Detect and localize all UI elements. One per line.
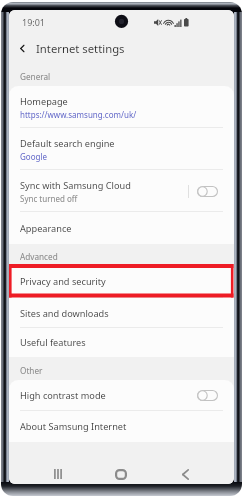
staticText: https://www.samsung.com/uk/ bbox=[20, 109, 137, 120]
button[interactable]: Homepage bbox=[9, 86, 234, 128]
button[interactable]: High contrast mode bbox=[9, 380, 234, 411]
staticText: Appearance bbox=[20, 222, 72, 235]
staticText: Google bbox=[20, 151, 47, 162]
staticText: Advanced bbox=[20, 251, 58, 262]
button[interactable]: Home bbox=[89, 464, 153, 484]
staticText: Sync with Samsung Cloud bbox=[20, 179, 131, 192]
button[interactable]: Toggle High contrast mode bbox=[197, 390, 218, 401]
button[interactable]: Sync with Samsung Cloud bbox=[9, 170, 234, 212]
staticText: Default search engine bbox=[20, 137, 115, 150]
staticText: Internet settings bbox=[36, 41, 125, 56]
button[interactable]: Appearance bbox=[9, 212, 234, 244]
button[interactable]: Toggle Sync with Samsung Cloud bbox=[197, 186, 218, 197]
button[interactable]: Useful features bbox=[9, 328, 234, 357]
button[interactable]: Privacy and security bbox=[9, 265, 234, 298]
staticText: About Samsung Internet bbox=[20, 420, 127, 433]
staticText: Homepage bbox=[20, 95, 68, 108]
button[interactable]: Navigate up bbox=[14, 40, 31, 57]
button[interactable]: Default search engine bbox=[9, 128, 234, 170]
button[interactable]: Recent apps bbox=[26, 464, 89, 484]
staticText: Privacy and security bbox=[20, 275, 106, 288]
button[interactable]: Back bbox=[153, 464, 217, 484]
staticText: Other bbox=[20, 365, 43, 376]
staticText: 19:01 bbox=[22, 16, 46, 28]
button[interactable]: About Samsung Internet bbox=[9, 411, 234, 442]
staticText: General bbox=[20, 71, 51, 82]
staticText: Sync turned off bbox=[20, 193, 78, 204]
staticText: Sites and downloads bbox=[20, 307, 109, 320]
staticText: High contrast mode bbox=[20, 389, 106, 402]
staticText: Useful features bbox=[20, 336, 86, 349]
button[interactable]: Sites and downloads bbox=[9, 298, 234, 328]
